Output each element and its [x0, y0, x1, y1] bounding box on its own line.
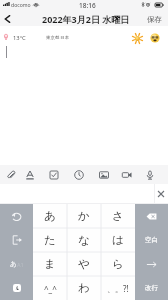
button[interactable]: た — [33, 228, 67, 252]
staticText: 18:16 — [79, 1, 96, 10]
staticText: A1 — [17, 261, 24, 268]
button[interactable]: や — [67, 252, 101, 276]
button[interactable]: 改行 — [135, 276, 168, 300]
button[interactable]: 保存 — [147, 13, 162, 26]
staticText: な — [78, 233, 90, 247]
staticText: か — [78, 209, 90, 223]
staticText: ら — [112, 257, 124, 271]
staticText: 東京都 日本 — [46, 34, 70, 40]
staticText: 13°C — [13, 34, 26, 42]
button[interactable]: Next — [135, 252, 168, 276]
button[interactable]: Image — [94, 165, 113, 184]
button[interactable]: ま — [33, 252, 67, 276]
button[interactable]: Close keyboard — [153, 186, 168, 201]
staticText: あ — [10, 260, 17, 268]
button[interactable]: か — [67, 204, 101, 228]
button[interactable]: あ — [33, 204, 67, 228]
button[interactable]: ら — [101, 252, 135, 276]
staticText: は — [112, 233, 124, 247]
button[interactable]: わ — [67, 276, 101, 300]
staticText: ま — [44, 257, 56, 271]
button[interactable]: Back — [0, 13, 20, 26]
button[interactable]: さ — [101, 204, 135, 228]
staticText: た — [44, 233, 56, 247]
staticText: 2022年3月2日 水曜日 — [42, 13, 130, 25]
button[interactable]: Backspace — [135, 204, 168, 228]
staticText: 、。?! — [107, 283, 129, 294]
staticText: 改行 — [145, 284, 158, 292]
staticText: さ — [112, 209, 124, 223]
button[interactable]: Undo — [0, 204, 33, 228]
button[interactable]: Exit — [0, 228, 33, 252]
staticText: わ — [78, 281, 90, 295]
button[interactable]: Reminder — [69, 165, 88, 184]
button[interactable]: Format text — [20, 165, 39, 184]
staticText: docomo — [11, 2, 31, 9]
button[interactable]: 空白 — [135, 228, 168, 252]
staticText: 保存 — [147, 15, 162, 24]
button[interactable]: あ — [0, 252, 33, 276]
button[interactable]: Checklist — [44, 165, 63, 184]
staticText: 空白 — [145, 236, 158, 244]
staticText: あ — [44, 209, 56, 223]
button[interactable]: Voice — [140, 165, 159, 184]
button[interactable]: な — [67, 228, 101, 252]
button[interactable]: ^_^ — [33, 276, 67, 300]
button[interactable]: は — [101, 228, 135, 252]
button[interactable]: 、。?! — [101, 276, 135, 300]
button[interactable]: Switch input method — [0, 276, 33, 300]
button[interactable]: 13°C — [0, 26, 168, 48]
button[interactable]: Attach — [1, 165, 20, 184]
button[interactable]: Video — [117, 165, 136, 184]
staticText: ^_^ — [44, 283, 57, 294]
staticText: や — [78, 257, 90, 271]
